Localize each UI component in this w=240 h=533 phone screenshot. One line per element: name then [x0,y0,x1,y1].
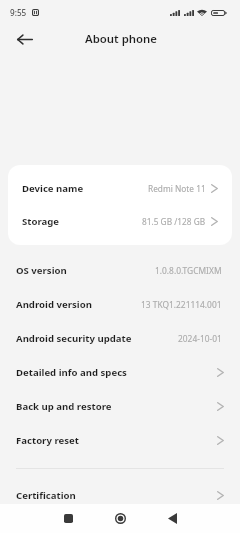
button[interactable]: Factory reset [0,423,240,457]
button[interactable]: Back up and restore [0,389,240,423]
button[interactable]: Recent apps [42,504,94,533]
button[interactable]: Back [146,504,198,533]
staticText: 13 TKQ1.221114.001 [141,299,222,310]
staticText: Certification [16,489,76,502]
staticText: 81.5 GB /128 GB [142,216,206,227]
button[interactable]: Storage [8,205,232,238]
staticText: Factory reset [16,434,79,447]
button[interactable]: Home [94,504,146,533]
staticText: Device name [22,182,84,195]
button[interactable]: Certification [0,478,240,512]
staticText: Redmi Note 11 [148,183,206,194]
staticText: OS version [16,264,67,277]
staticText: Android version [16,298,92,311]
button[interactable]: Android security update [0,321,240,355]
staticText: 1.0.8.0.TGCMIXM [155,265,222,276]
staticText: Detailed info and specs [16,366,127,379]
button[interactable]: Detailed info and specs [0,355,240,389]
staticText: About phone [85,31,158,47]
staticText: Back up and restore [16,400,112,413]
staticText: Android security update [16,332,132,345]
button[interactable]: Device name [8,172,232,205]
staticText: Storage [22,215,60,228]
staticText: 9:55 [10,7,27,18]
button[interactable]: Back [12,26,38,52]
button[interactable]: OS version [0,253,240,287]
button[interactable]: Android version [0,287,240,321]
staticText: 2024-10-01 [178,333,222,344]
